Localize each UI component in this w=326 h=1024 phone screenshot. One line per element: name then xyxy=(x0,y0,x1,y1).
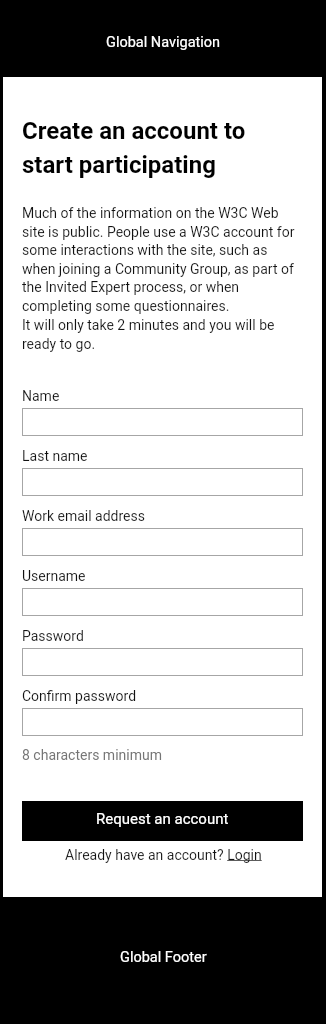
button[interactable] xyxy=(22,528,303,556)
button[interactable]: Global Footer xyxy=(120,949,207,966)
button[interactable] xyxy=(22,468,303,496)
button[interactable] xyxy=(22,408,303,436)
staticText: site is public. People use a W3C account… xyxy=(22,224,295,240)
button[interactable] xyxy=(22,588,303,616)
button[interactable] xyxy=(22,648,303,676)
staticText: completing some questionnaires. xyxy=(22,298,230,314)
button[interactable]: Request an account xyxy=(22,801,303,841)
staticText: start participating xyxy=(22,151,216,179)
staticText: Work email address xyxy=(22,508,145,524)
staticText: Last name xyxy=(22,448,88,464)
button[interactable]: Global Navigation xyxy=(106,34,221,51)
staticText: when joining a Community Group, as part … xyxy=(22,261,294,277)
staticText: Username xyxy=(22,568,86,584)
staticText: 8 characters minimum xyxy=(22,747,162,763)
button[interactable] xyxy=(22,708,303,736)
staticText: Confirm password xyxy=(22,688,137,704)
button[interactable]: Already have an account? Login xyxy=(65,847,262,863)
staticText: some interactions with the site, such as xyxy=(22,242,268,258)
staticText: ready to go. xyxy=(22,336,96,352)
staticText: Password xyxy=(22,628,84,644)
staticText: Much of the information on the W3C Web xyxy=(22,205,279,221)
staticText: the Invited Expert process, or when xyxy=(22,279,240,295)
staticText: Request an account xyxy=(96,810,229,828)
staticText: Create an account to xyxy=(22,117,246,145)
staticText: It will only take 2 minutes and you will… xyxy=(22,317,275,333)
staticText: Name xyxy=(22,388,60,404)
